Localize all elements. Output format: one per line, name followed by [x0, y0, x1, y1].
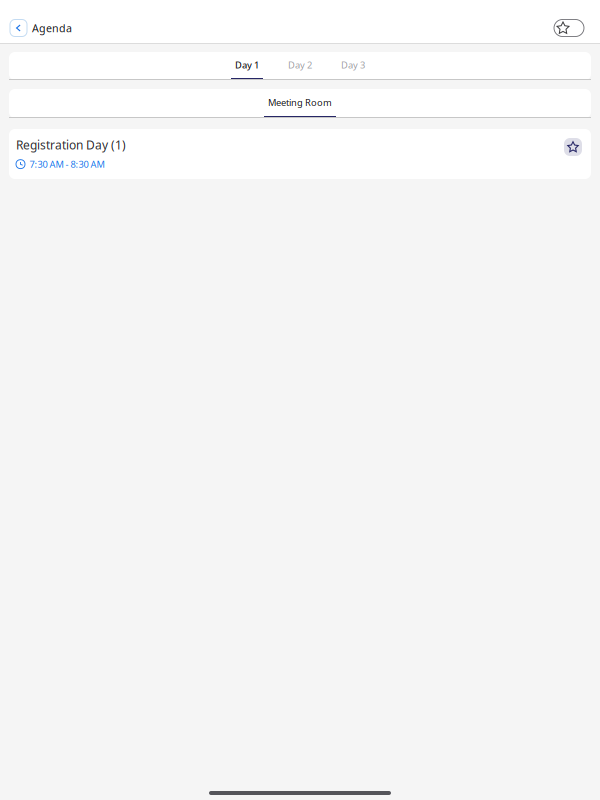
button[interactable]: Day 2: [284, 52, 316, 80]
staticText: Day 1: [235, 59, 259, 71]
button[interactable]: Day 1: [231, 52, 263, 80]
button[interactable]: Day 3: [337, 52, 369, 80]
staticText: Day 3: [341, 59, 365, 71]
button[interactable]: Back: [10, 19, 27, 36]
staticText: Day 2: [288, 59, 312, 71]
staticText: 7:30 AM - 8:30 AM: [29, 158, 104, 170]
button[interactable]: Favourite Registration Day (1): [564, 138, 582, 156]
staticText: Agenda: [32, 21, 72, 35]
button[interactable]: Meeting Room: [264, 89, 336, 118]
button[interactable]: Registration Day (1): [9, 129, 591, 179]
staticText: Registration Day (1): [16, 137, 126, 153]
staticText: Meeting Room: [268, 96, 332, 109]
button[interactable]: Bookmarks: [554, 19, 584, 36]
